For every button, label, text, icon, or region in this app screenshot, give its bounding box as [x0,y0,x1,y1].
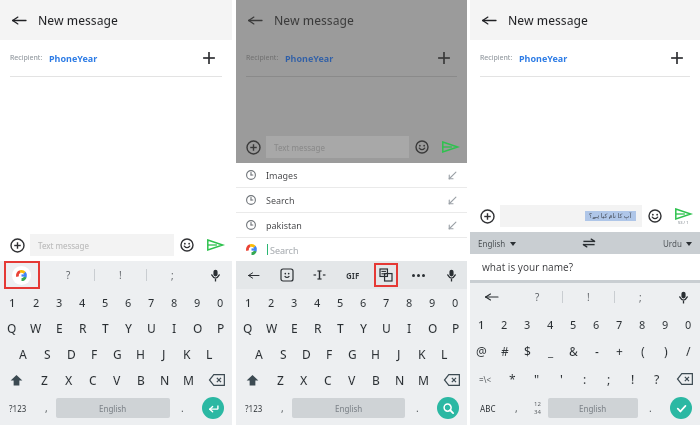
button[interactable]: S [271,341,295,367]
button[interactable]: Enter [194,393,232,423]
button[interactable]: Recipient: [470,40,700,76]
button[interactable]: ! [621,365,645,393]
button[interactable]: Emoji [174,232,200,258]
button[interactable]: English [292,398,405,418]
button[interactable]: ? [512,283,562,311]
button[interactable]: 2 [24,289,48,315]
button[interactable]: ? [645,365,669,393]
button[interactable]: I [398,315,421,341]
button[interactable]: 4 [539,311,562,337]
button[interactable]: @ [470,337,493,365]
button[interactable]: 9 [654,311,677,337]
button[interactable]: . [405,393,429,423]
button[interactable]: Text message [30,234,174,256]
button[interactable]: G [341,341,364,367]
button[interactable]: Back [236,0,467,40]
button[interactable]: Search [236,188,467,212]
button[interactable]: Recipient: [0,40,232,76]
button[interactable]: آپ کا نام کیا ہے؟ [500,205,642,227]
button[interactable]: Back [0,1,38,39]
button[interactable]: 1 [0,289,24,315]
button[interactable]: 9 [186,289,209,315]
button[interactable]: ; [615,283,666,311]
button[interactable]: P [209,315,232,341]
button[interactable]: ! [95,261,146,289]
button[interactable]: 8 [163,289,186,315]
button[interactable]: 4 [306,289,329,315]
button[interactable]: Search [236,238,467,261]
button[interactable]: , [36,393,56,423]
button[interactable]: Backspace [201,367,232,393]
button[interactable]: L [198,341,221,367]
button[interactable]: W [260,315,283,341]
button[interactable]: English [470,238,516,249]
button[interactable]: : [573,365,597,393]
button[interactable]: Shift [0,367,32,393]
button[interactable]: Images [236,163,467,187]
button[interactable]: K [175,341,198,367]
button[interactable]: Text message [266,136,409,158]
button[interactable]: Y [117,315,140,341]
button[interactable]: ' [549,365,573,393]
button[interactable]: what is your name? [476,255,694,279]
button[interactable]: GIF [336,261,369,289]
button[interactable]: J [152,341,175,367]
button[interactable]: J [387,341,410,367]
button[interactable]: Shift [236,367,268,393]
button[interactable]: D [59,341,83,367]
button[interactable]: 6 [117,289,140,315]
button[interactable]: Recipient: [236,40,467,76]
button[interactable]: Voice input [198,261,232,289]
button[interactable]: W [24,315,48,341]
button[interactable]: I [163,315,186,341]
button[interactable]: Back [470,0,700,40]
button[interactable]: Voice input [435,261,467,289]
button[interactable]: M [177,367,201,393]
button[interactable]: T [329,315,352,341]
button[interactable]: 5 [562,311,585,337]
button[interactable]: E [48,315,71,341]
button[interactable]: ; [147,261,198,289]
button[interactable]: P [444,315,467,341]
button[interactable]: 6 [352,289,375,315]
button[interactable]: 1 [470,311,493,337]
button[interactable]: English [548,398,638,418]
button[interactable]: U [375,315,398,341]
button[interactable]: C [316,367,340,393]
button[interactable]: H [364,341,387,367]
button[interactable]: L [433,341,456,367]
button[interactable]: 0 [444,289,467,315]
button[interactable]: ? [42,261,94,289]
button[interactable]: =\< [470,365,500,393]
button[interactable]: K [410,341,433,367]
button[interactable]: Y [352,315,375,341]
button[interactable]: O [421,315,444,341]
button[interactable]: B [129,367,153,393]
button[interactable]: D [295,341,318,367]
button[interactable]: Z [32,367,57,393]
button[interactable]: 1 [236,289,260,315]
button[interactable]: S [35,341,59,367]
button[interactable]: ; [597,365,621,393]
button[interactable]: F [318,341,341,367]
button[interactable]: Back [470,283,512,311]
button[interactable]: Back [0,0,232,40]
button[interactable]: + [608,337,631,365]
button[interactable]: Back [236,1,274,39]
button[interactable]: Urdu [663,238,700,249]
button[interactable]: R [71,315,94,341]
button[interactable]: 2 [493,311,516,337]
button[interactable]: Voice input [666,283,700,311]
button[interactable]: _ [539,337,562,365]
button[interactable]: Back [470,1,508,39]
button[interactable]: 5 [329,289,352,315]
button[interactable]: R [306,315,329,341]
button[interactable]: Add recipient [192,41,226,75]
button[interactable]: & [562,337,585,365]
button[interactable]: ?123 [0,393,36,423]
button[interactable]: ?123 [236,393,272,423]
button[interactable]: Swap languages [579,233,599,253]
button[interactable]: Q [0,315,24,341]
button[interactable]: - [585,337,608,365]
button[interactable]: / [677,337,700,365]
